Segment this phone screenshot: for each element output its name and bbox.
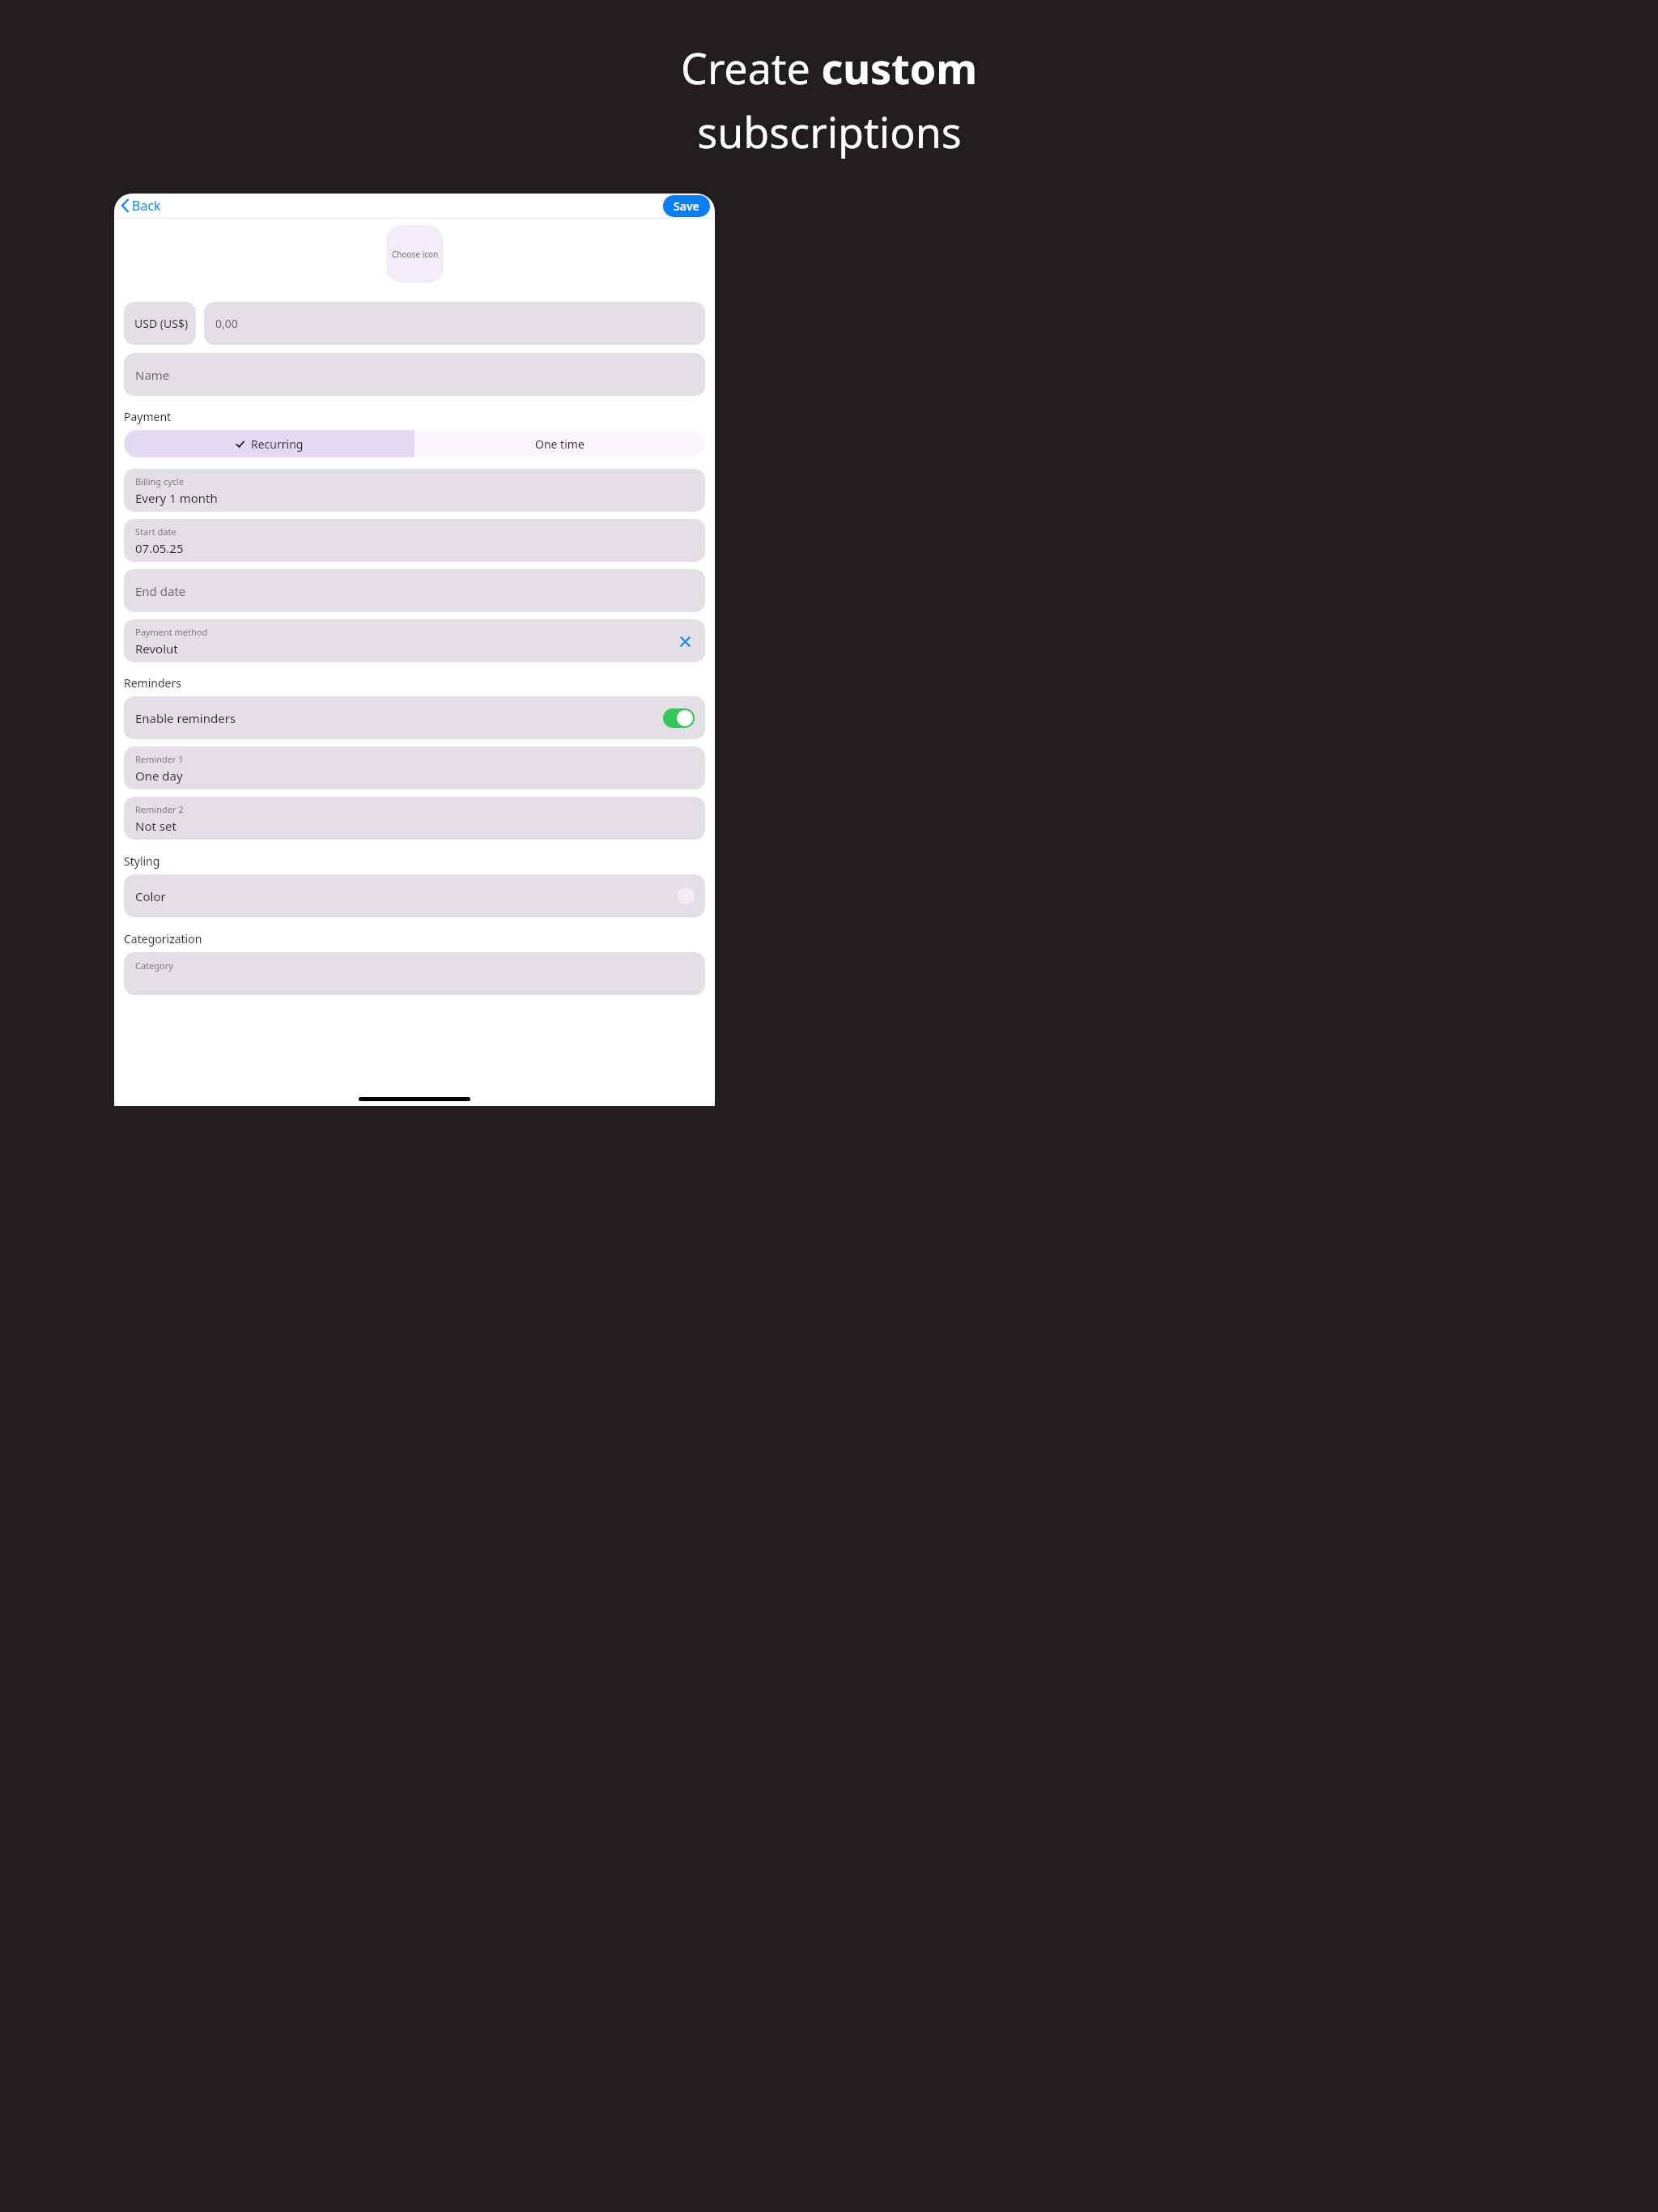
staticText: 07.05.25 [135, 540, 184, 556]
staticText: Color [135, 888, 166, 904]
button[interactable]: Color [124, 874, 705, 917]
button[interactable]: 0,00 [204, 302, 705, 345]
staticText: subscriptions [697, 103, 962, 160]
staticText: Every 1 month [135, 490, 218, 506]
staticText: Payment method [135, 626, 208, 638]
staticText: Reminder 2 [135, 803, 184, 815]
button[interactable]: End date [124, 569, 705, 612]
staticText: One time [535, 436, 585, 452]
button[interactable]: Enable reminders toggle [663, 708, 695, 728]
staticText: Start date [135, 525, 176, 538]
staticText: End date [135, 583, 186, 599]
staticText: Enable reminders [135, 710, 236, 726]
staticText: Recurring [251, 436, 304, 452]
staticText: Create custom [681, 39, 977, 96]
button[interactable]: Choose icon [386, 225, 444, 283]
button[interactable]: Clear payment method [673, 629, 697, 653]
staticText: Styling [124, 853, 160, 869]
staticText: Reminders [124, 675, 181, 691]
button[interactable]: Payment method [124, 619, 705, 662]
button[interactable]: Start date [124, 519, 705, 562]
staticText: Back [132, 197, 161, 215]
button[interactable]: Category [124, 952, 705, 995]
staticText: Name [135, 367, 170, 383]
button[interactable]: Save [663, 195, 710, 217]
button[interactable]: USD (US$) [124, 302, 196, 345]
staticText: USD (US$) [134, 316, 189, 331]
staticText: Reminder 1 [135, 753, 184, 765]
staticText: Save [674, 198, 699, 214]
staticText: 0,00 [215, 316, 238, 331]
button[interactable]: One time [414, 430, 705, 457]
button[interactable]: Enable reminders [124, 696, 705, 739]
button[interactable]: Back [117, 195, 164, 216]
button[interactable]: Recurring [124, 430, 414, 457]
staticText: Payment [124, 409, 172, 424]
staticText: Billing cycle [135, 475, 185, 487]
staticText: Not set [135, 818, 176, 834]
button[interactable]: Billing cycle [124, 469, 705, 512]
staticText: One day [135, 768, 183, 784]
staticText: Categorization [124, 931, 202, 946]
staticText: Revolut [135, 640, 178, 657]
button[interactable]: Name [124, 353, 705, 396]
staticText: Category [135, 959, 173, 972]
button[interactable]: Reminder 2 [124, 797, 705, 840]
button[interactable]: Reminder 1 [124, 747, 705, 789]
staticText: Choose icon [392, 249, 439, 260]
